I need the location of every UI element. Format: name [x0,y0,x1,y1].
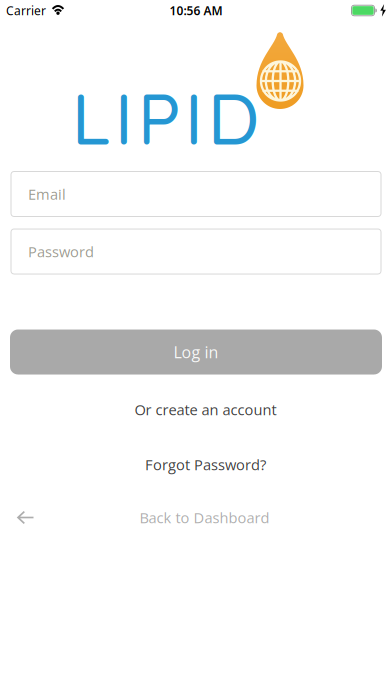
button[interactable]: Or create an account [134,399,276,419]
staticText: Back to Dashboard [139,507,269,527]
staticText: Email [28,184,66,204]
textField[interactable]: Password [28,241,381,261]
staticText: Password [28,241,94,261]
staticText: 10:56 AM [169,2,222,18]
staticText: Or create an account [134,399,276,419]
button[interactable]: Forgot Password? [145,454,266,474]
staticText: Log in [173,341,218,363]
button[interactable]: Back to Dashboard [139,507,269,527]
staticText: LIPID [71,72,259,162]
staticText: Carrier [6,2,46,18]
staticText: Forgot Password? [145,454,266,474]
textField[interactable]: Email [28,184,381,204]
button[interactable]: Back [11,503,39,531]
button[interactable]: Log in [10,329,382,374]
